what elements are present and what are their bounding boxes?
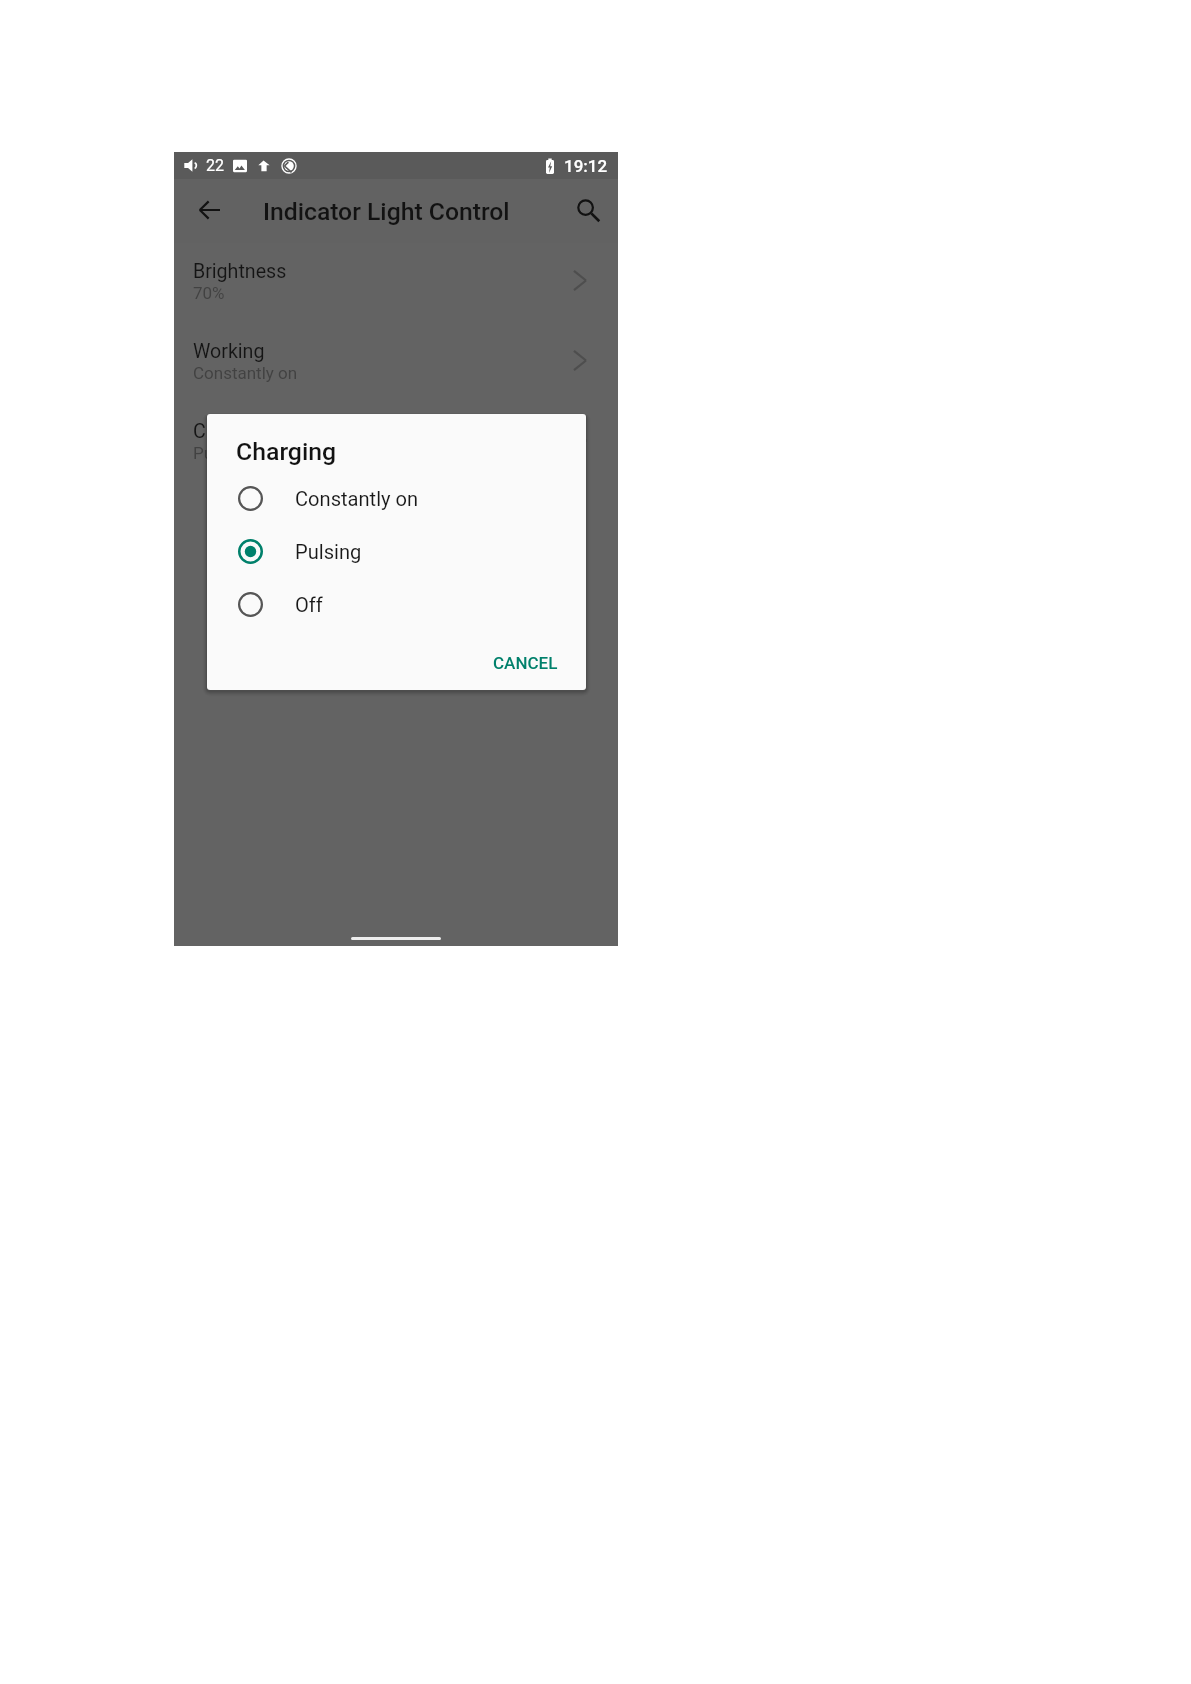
button[interactable]: Off	[207, 578, 586, 631]
button[interactable]: Brightness	[174, 243, 618, 323]
staticText: Indicator Light Control	[263, 197, 510, 226]
staticText: Working	[193, 340, 265, 363]
staticText: CANCEL	[493, 653, 558, 673]
staticText: Pulsing	[193, 443, 250, 463]
staticText: 22	[206, 156, 224, 175]
button[interactable]: Pulsing	[207, 525, 586, 578]
staticText: Pulsing	[295, 540, 362, 564]
staticText: Charging	[193, 420, 272, 443]
staticText: Brightness	[193, 260, 287, 283]
staticText: 19:12	[564, 156, 608, 176]
button[interactable]: Working	[174, 323, 618, 403]
staticText: Constantly on	[193, 363, 298, 383]
button[interactable]: Constantly on	[207, 472, 586, 525]
staticText: Off	[295, 593, 323, 617]
button[interactable]: Charging	[174, 403, 618, 483]
staticText: Charging	[236, 437, 337, 466]
button[interactable]: Back	[187, 187, 232, 232]
staticText: 70%	[193, 283, 225, 303]
button[interactable]: CANCEL	[482, 644, 569, 682]
button[interactable]: Search	[565, 187, 610, 232]
staticText: Constantly on	[295, 487, 419, 511]
